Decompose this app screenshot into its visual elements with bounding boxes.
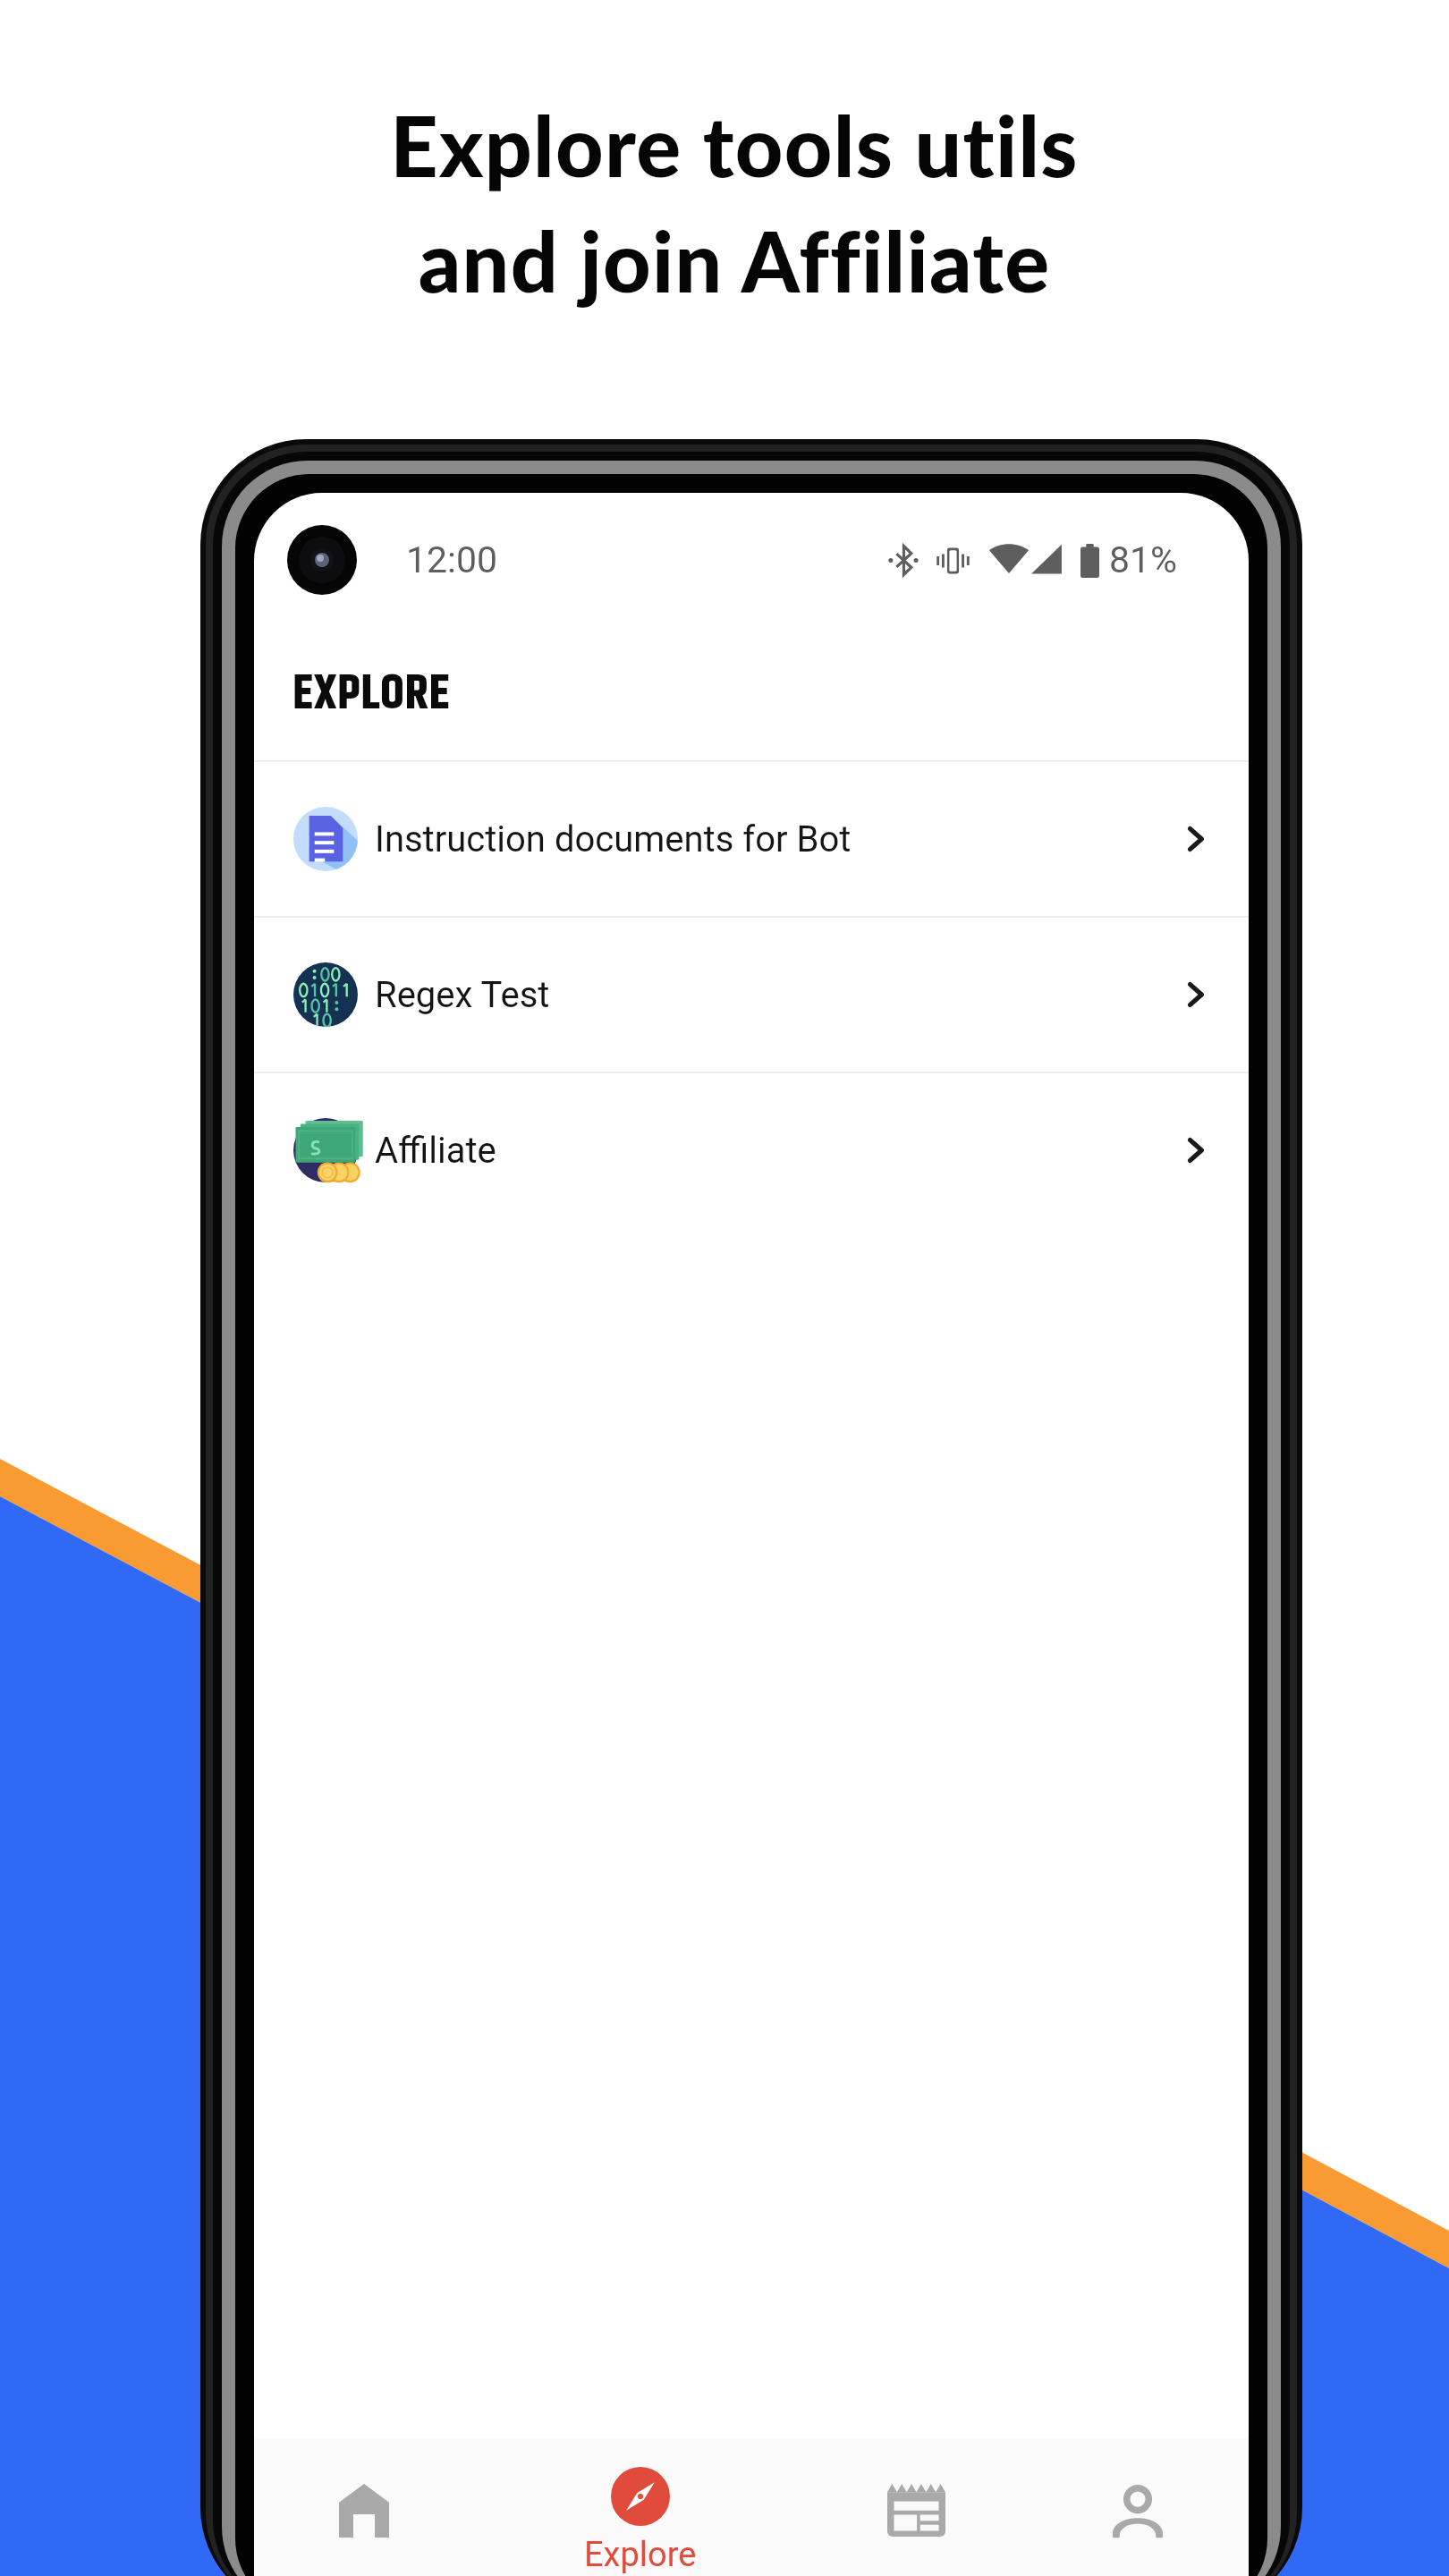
staticText: Affiliate	[375, 1130, 496, 1172]
staticText: Explore	[584, 2535, 697, 2575]
button[interactable]: Profile	[1026, 2439, 1249, 2576]
button[interactable]: Instruction documents for Bot	[254, 762, 1249, 916]
staticText: 81%	[1109, 538, 1178, 581]
button[interactable]: Affiliate	[254, 1073, 1249, 1227]
button[interactable]: Explore	[474, 2439, 806, 2576]
staticText: Regex Test	[375, 974, 550, 1016]
staticText: EXPLORE	[292, 657, 451, 732]
staticText: 12:00	[406, 538, 498, 581]
staticText: Instruction documents for Bot	[375, 818, 852, 860]
button[interactable]: News	[806, 2439, 1026, 2576]
staticText: Explore tools utils and join Affiliate	[390, 95, 1079, 310]
button[interactable]: Regex Test	[254, 918, 1249, 1072]
button[interactable]: Home	[254, 2439, 474, 2576]
